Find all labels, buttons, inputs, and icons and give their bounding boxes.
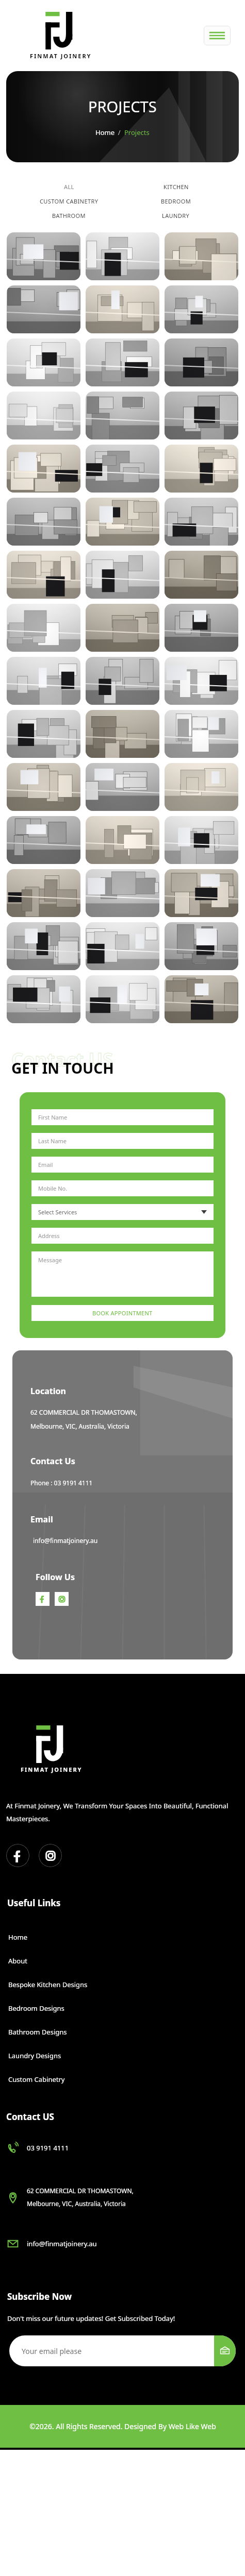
- button[interactable]: [165, 604, 238, 652]
- button[interactable]: [165, 445, 238, 493]
- button[interactable]: [165, 232, 238, 280]
- button[interactable]: Facebook: [36, 1592, 50, 1606]
- staticText: Subscribe Now: [7, 2291, 72, 2302]
- button[interactable]: [86, 710, 159, 758]
- button[interactable]: [165, 392, 238, 439]
- button[interactable]: [7, 445, 80, 493]
- button[interactable]: [7, 604, 80, 652]
- button[interactable]: [165, 816, 238, 864]
- button[interactable]: [165, 763, 238, 811]
- other: Call: [6, 2141, 20, 2155]
- button[interactable]: Last Name: [31, 1133, 214, 1149]
- button[interactable]: [7, 763, 80, 811]
- button[interactable]: Bespoke Kitchen Designs: [0, 1973, 245, 1996]
- button[interactable]: Address: [31, 1228, 214, 1244]
- button[interactable]: Home: [95, 128, 115, 137]
- button[interactable]: [165, 498, 238, 546]
- button[interactable]: [86, 922, 159, 970]
- button[interactable]: [7, 338, 80, 386]
- button[interactable]: BATHROOM: [15, 212, 122, 219]
- button[interactable]: LAUNDRY: [122, 212, 230, 219]
- button[interactable]: [86, 392, 159, 439]
- button[interactable]: Message: [31, 1251, 214, 1297]
- staticText: Your email please: [22, 2346, 82, 2356]
- button[interactable]: [7, 285, 80, 333]
- button[interactable]: Open menu: [204, 26, 231, 45]
- button[interactable]: Facebook: [6, 1844, 29, 1867]
- staticText: Message: [38, 1256, 62, 1264]
- staticText: Phone : 03 9191 4111: [30, 1479, 93, 1487]
- button[interactable]: [86, 604, 159, 652]
- button[interactable]: [86, 445, 159, 493]
- button[interactable]: About: [0, 1949, 245, 1973]
- button[interactable]: [165, 869, 238, 917]
- button[interactable]: KITCHEN: [122, 183, 230, 191]
- staticText: FINMAT JOINERY: [21, 1766, 83, 1773]
- button[interactable]: Mobile No.: [31, 1180, 214, 1196]
- button[interactable]: [86, 498, 159, 546]
- button[interactable]: Email: [0, 2237, 245, 2250]
- button[interactable]: BEDROOM: [122, 197, 230, 205]
- button[interactable]: [86, 975, 159, 1023]
- staticText: First Name: [38, 1113, 68, 1121]
- button[interactable]: [86, 285, 159, 333]
- button[interactable]: [165, 338, 238, 386]
- button[interactable]: [7, 657, 80, 705]
- staticText: Don't miss our future updates! Get Subsc…: [7, 2314, 175, 2323]
- staticText: Contact US: [6, 2111, 54, 2123]
- button[interactable]: Instagram: [39, 1844, 62, 1867]
- staticText: PROJECTS: [88, 96, 157, 116]
- button[interactable]: [7, 869, 80, 917]
- button[interactable]: [86, 763, 159, 811]
- button[interactable]: [86, 869, 159, 917]
- button[interactable]: [165, 922, 238, 970]
- button[interactable]: ALL: [15, 183, 122, 191]
- button[interactable]: Custom Cabinetry: [0, 2067, 245, 2091]
- staticText: Home: [95, 128, 115, 137]
- button[interactable]: [7, 975, 80, 1023]
- staticText: Address: [38, 1232, 60, 1240]
- button[interactable]: [165, 285, 238, 333]
- button[interactable]: [7, 816, 80, 864]
- staticText: Laundry Designs: [8, 2051, 61, 2060]
- other: Address: [6, 2191, 20, 2204]
- button[interactable]: [165, 975, 238, 1023]
- button[interactable]: Select Services: [31, 1204, 214, 1220]
- button[interactable]: Address: [0, 2187, 245, 2208]
- button[interactable]: First Name: [31, 1109, 214, 1125]
- staticText: KITCHEN: [164, 183, 189, 191]
- button[interactable]: [7, 498, 80, 546]
- button[interactable]: [86, 338, 159, 386]
- button[interactable]: [7, 232, 80, 280]
- button[interactable]: Projects: [124, 128, 150, 137]
- button[interactable]: Home: [0, 1925, 245, 1949]
- button[interactable]: CUSTOM CABINETRY: [15, 197, 122, 205]
- button[interactable]: [86, 232, 159, 280]
- button[interactable]: [7, 922, 80, 970]
- button[interactable]: BOOK APPOINTMENT: [31, 1305, 214, 1321]
- button[interactable]: [165, 551, 238, 599]
- staticText: Last Name: [38, 1137, 67, 1145]
- button[interactable]: [165, 710, 238, 758]
- staticText: Contact Us: [30, 1455, 75, 1467]
- staticText: 62 COMMERCIAL DR THOMASTOWN, Melbourne, …: [30, 1408, 137, 1431]
- button[interactable]: [7, 551, 80, 599]
- button[interactable]: [86, 816, 159, 864]
- staticText: Custom Cabinetry: [8, 2075, 65, 2084]
- button[interactable]: [7, 392, 80, 439]
- staticText: Location: [30, 1385, 66, 1397]
- button[interactable]: Bedroom Designs: [0, 1996, 245, 2020]
- button[interactable]: [165, 657, 238, 705]
- button[interactable]: Instagram: [55, 1592, 69, 1606]
- button[interactable]: Your email please: [9, 2335, 214, 2366]
- button[interactable]: Bathroom Designs: [0, 2020, 245, 2044]
- button[interactable]: Call: [0, 2141, 245, 2155]
- button[interactable]: Email: [31, 1157, 214, 1173]
- staticText: Useful Links: [7, 1897, 61, 1909]
- button[interactable]: Laundry Designs: [0, 2044, 245, 2067]
- button[interactable]: [86, 657, 159, 705]
- button[interactable]: Subscribe: [214, 2335, 236, 2366]
- staticText: Email: [38, 1161, 53, 1168]
- button[interactable]: [7, 710, 80, 758]
- button[interactable]: [86, 551, 159, 599]
